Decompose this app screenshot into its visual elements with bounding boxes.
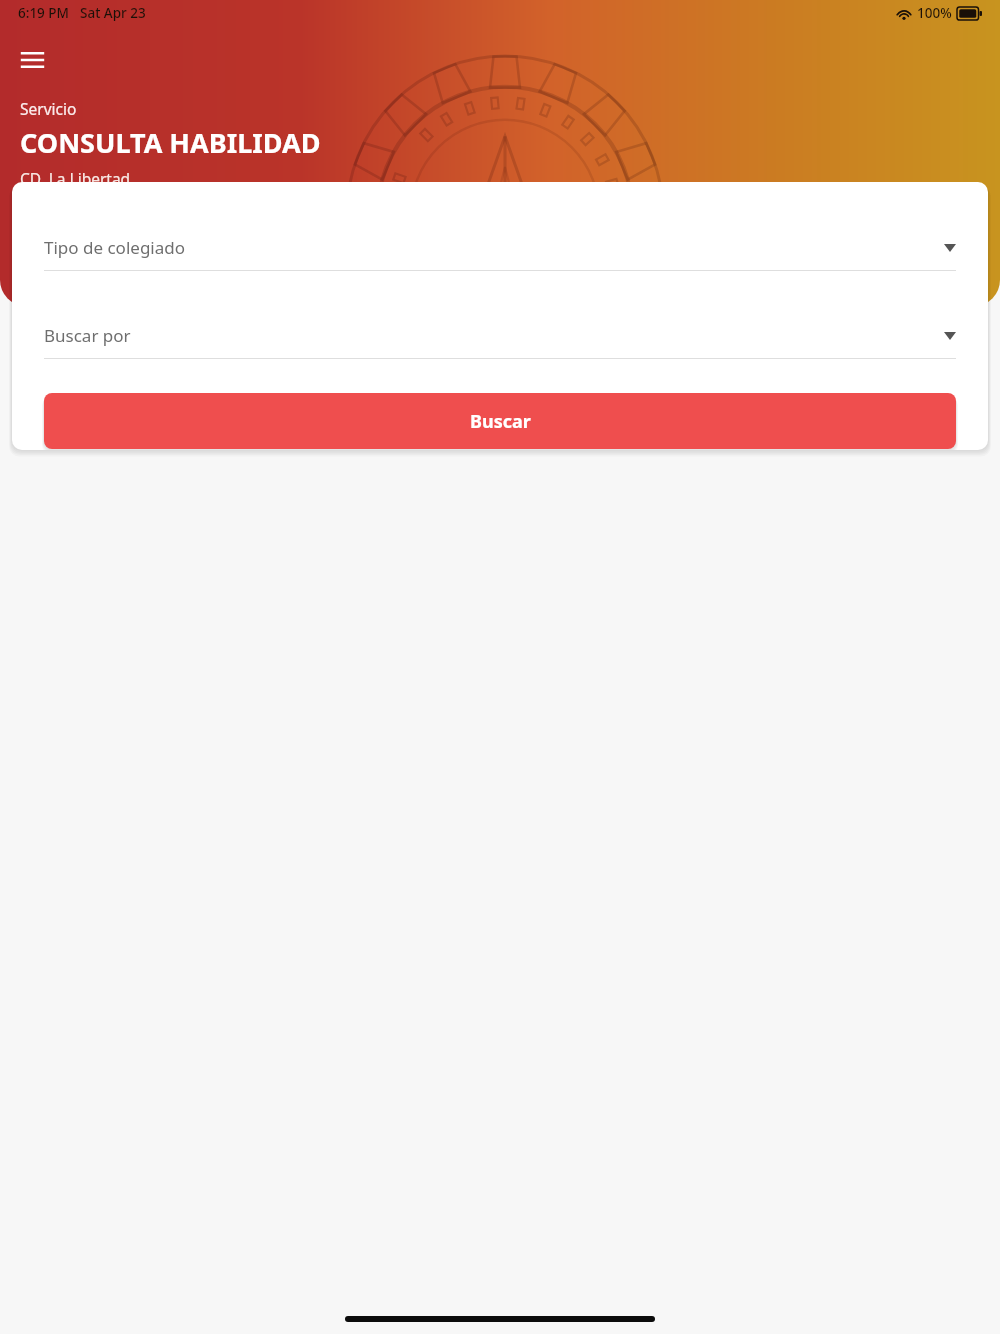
staticText: Tipo de colegiado [44, 236, 185, 259]
button[interactable]: Open navigation menu [12, 40, 52, 80]
staticText: Buscar por [44, 324, 131, 347]
staticText: Buscar [470, 409, 531, 434]
button[interactable]: Buscar [44, 393, 956, 449]
button[interactable]: Tipo de colegiado [44, 236, 956, 271]
staticText: CONSULTA HABILIDAD [20, 124, 321, 161]
staticText: Sat Apr 23 [80, 4, 146, 22]
button[interactable]: Buscar por [44, 324, 956, 359]
staticText: 6:19 PM [18, 4, 69, 22]
staticText: CD. La Libertad [20, 168, 131, 189]
staticText: 100% [917, 4, 952, 22]
staticText: Servicio [20, 98, 77, 119]
